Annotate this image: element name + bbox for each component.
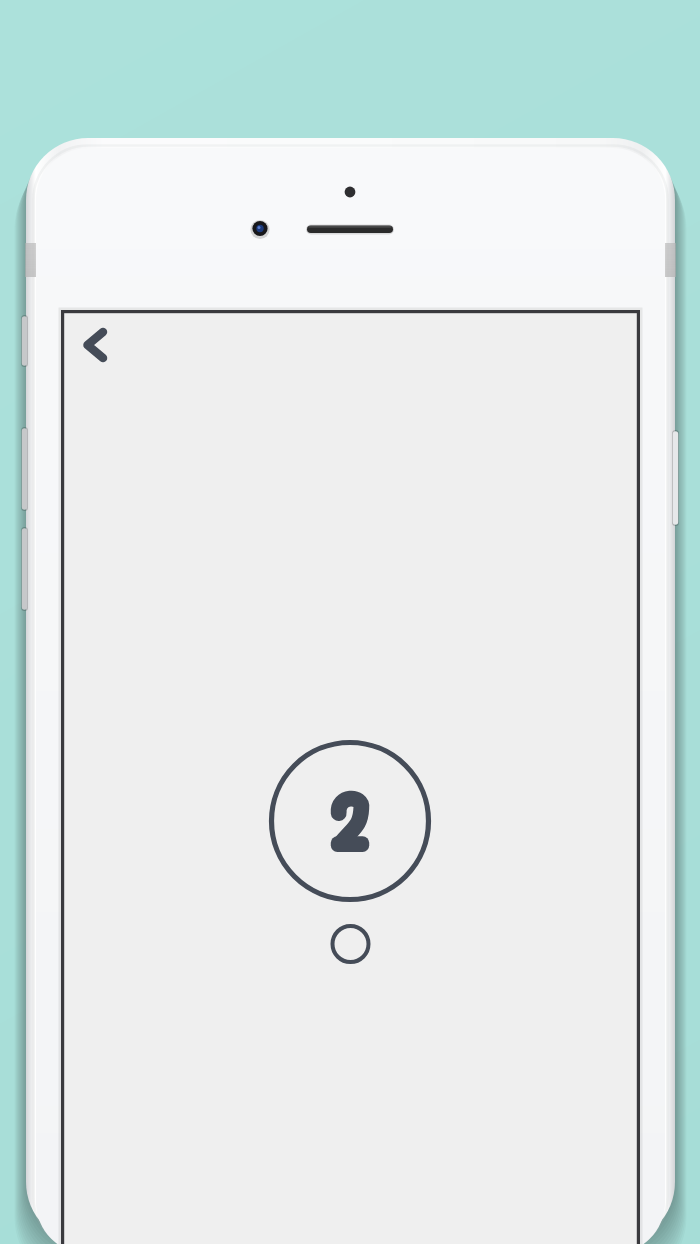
button[interactable]: Counter, 2	[268, 739, 433, 904]
button[interactable]: Reset	[330, 924, 371, 965]
button[interactable]: Back	[72, 314, 134, 376]
